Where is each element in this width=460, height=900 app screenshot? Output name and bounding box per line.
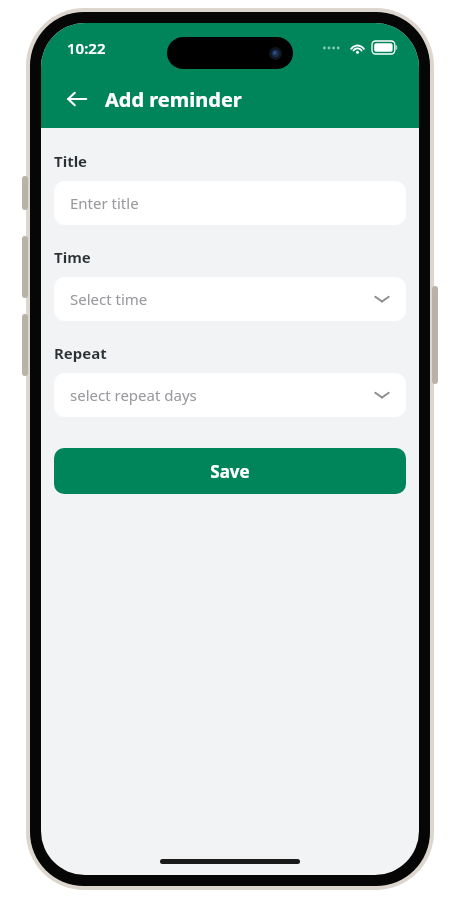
staticText: Enter title	[70, 193, 139, 213]
staticText: Save	[210, 460, 250, 483]
staticText: 10:22	[67, 38, 106, 58]
staticText: Time	[54, 247, 91, 267]
button[interactable]: Back	[59, 81, 95, 117]
button[interactable]: select repeat days	[54, 373, 406, 417]
staticText: Repeat	[54, 343, 107, 363]
staticText: Title	[54, 151, 88, 171]
button[interactable]: Save	[54, 448, 406, 494]
staticText: select repeat days	[70, 385, 197, 405]
staticText: Select time	[70, 289, 148, 309]
button[interactable]: Enter title	[54, 181, 406, 225]
button[interactable]: Select time	[54, 277, 406, 321]
staticText: Add reminder	[105, 86, 242, 113]
